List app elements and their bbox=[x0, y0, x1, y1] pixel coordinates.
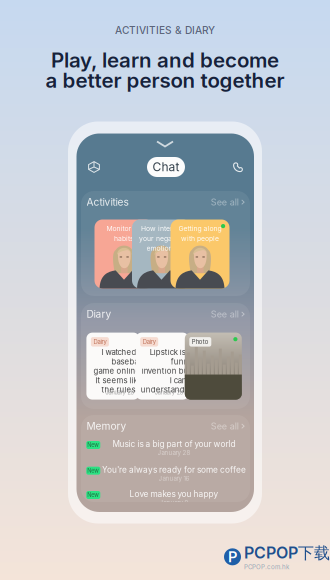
button[interactable]: Getting along bbox=[170, 219, 229, 288]
staticText: your negative bbox=[139, 234, 184, 242]
button[interactable]: New bbox=[81, 438, 250, 459]
button[interactable]: New bbox=[81, 464, 250, 485]
staticText: emotions bbox=[146, 244, 176, 252]
staticText: Play, learn and become bbox=[51, 47, 279, 72]
staticText: January 28 bbox=[157, 449, 190, 456]
staticText: New bbox=[87, 442, 99, 448]
button[interactable]: Call bbox=[227, 156, 249, 178]
staticText: ACTIVITIES & DIARY bbox=[115, 24, 215, 36]
staticText: a better person together bbox=[45, 68, 284, 93]
button[interactable]: New bbox=[81, 488, 250, 509]
staticText: Music is a big part of your world bbox=[112, 439, 235, 449]
staticText: New bbox=[87, 467, 99, 474]
staticText: You're always ready for some coffee bbox=[102, 465, 246, 475]
staticText: See all bbox=[211, 421, 239, 432]
button[interactable]: Photo bbox=[185, 333, 242, 400]
staticText: Diary bbox=[86, 308, 111, 320]
button[interactable]: See all bbox=[211, 197, 244, 208]
staticText: Dairy bbox=[143, 338, 156, 345]
staticText: Getting along bbox=[178, 224, 221, 233]
button[interactable]: See all bbox=[211, 309, 244, 320]
staticText: How intense bbox=[141, 224, 182, 233]
staticText: P bbox=[228, 548, 237, 566]
staticText: PCPOP.com.hk bbox=[244, 563, 289, 571]
button[interactable]: Monitoring bbox=[94, 219, 153, 288]
button[interactable]: Dairy bbox=[86, 333, 139, 400]
button[interactable]: Modules bbox=[83, 156, 105, 178]
staticText: I watched a baseball game online. It see… bbox=[93, 348, 142, 394]
staticText: January 16 bbox=[158, 475, 189, 482]
staticText: habits bbox=[114, 234, 134, 242]
staticText: Love makes you happy bbox=[129, 489, 218, 499]
staticText: Photo bbox=[192, 338, 209, 345]
staticText: New bbox=[87, 492, 99, 498]
staticText: Monitoring bbox=[106, 224, 141, 233]
staticText: January 28 bbox=[155, 389, 183, 396]
staticText: PCPOP下载 bbox=[244, 543, 330, 563]
button[interactable]: See all bbox=[211, 421, 244, 432]
staticText: See all bbox=[211, 309, 239, 320]
button[interactable]: Chat bbox=[147, 157, 185, 177]
staticText: Activities bbox=[86, 196, 128, 208]
staticText: January 9 bbox=[159, 499, 188, 506]
staticText: with people bbox=[181, 234, 219, 242]
staticText: January 28 bbox=[105, 389, 133, 396]
staticText: Chat bbox=[152, 160, 179, 174]
staticText: Dairy bbox=[93, 338, 106, 345]
button[interactable]: How intense bbox=[132, 219, 191, 288]
staticText: Memory bbox=[86, 420, 126, 432]
staticText: See all bbox=[211, 197, 239, 208]
staticText: Lipstick is a funny invention but I can'… bbox=[140, 348, 191, 394]
button[interactable]: Dairy bbox=[136, 333, 189, 400]
